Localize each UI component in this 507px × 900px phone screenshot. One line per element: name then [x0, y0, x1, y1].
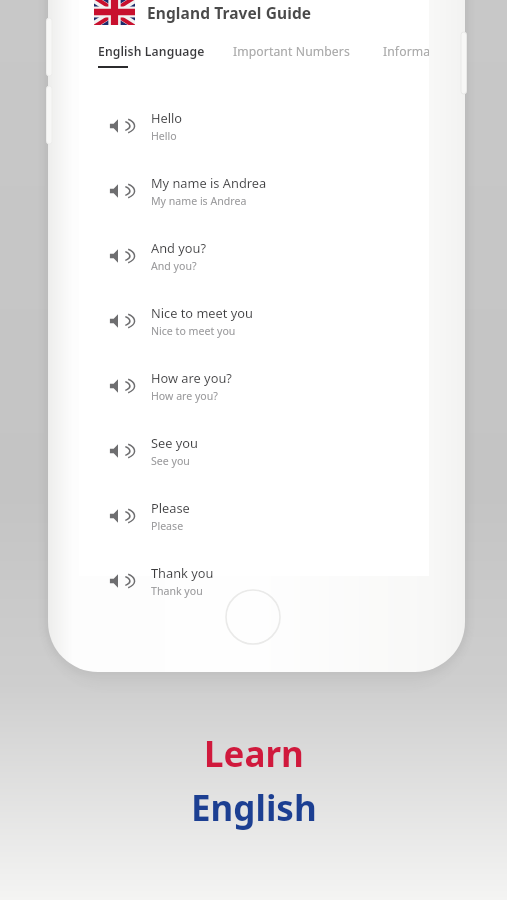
staticText: Hello — [151, 109, 183, 126]
button[interactable]: Informat — [369, 43, 429, 77]
staticText: How are you? — [151, 369, 232, 386]
button[interactable]: England Travel Guide — [94, 0, 444, 26]
button[interactable]: English Language — [79, 43, 219, 77]
staticText: Important Numbers — [233, 43, 350, 60]
staticText: Thank you — [151, 584, 203, 598]
staticText: And you? — [151, 259, 197, 273]
staticText: Nice to meet you — [151, 324, 236, 338]
staticText: Hello — [151, 129, 177, 143]
other: Play How are you? — [107, 375, 129, 397]
staticText: My name is Andrea — [151, 174, 267, 191]
other: Play Thank you — [107, 570, 129, 592]
button[interactable]: Play Hello — [79, 93, 429, 158]
button[interactable]: Important Numbers — [219, 43, 369, 77]
staticText: See you — [151, 454, 190, 468]
staticText: Learn — [204, 730, 304, 778]
staticText: Please — [151, 519, 184, 533]
staticText: English — [191, 784, 317, 832]
staticText: Nice to meet you — [151, 304, 253, 321]
staticText: My name is Andrea — [151, 194, 247, 208]
other: Play See you — [107, 440, 129, 462]
staticText: See you — [151, 434, 198, 451]
staticText: Please — [151, 499, 190, 516]
staticText: England Travel Guide — [147, 2, 312, 23]
button[interactable]: Play My name is Andrea — [79, 158, 429, 223]
staticText: Thank you — [151, 564, 214, 581]
staticText: English Language — [98, 43, 205, 60]
other: Play Please — [107, 505, 129, 527]
button[interactable]: Play Thank you — [79, 548, 429, 613]
other: Play Hello — [107, 115, 129, 137]
other: Play And you? — [107, 245, 129, 267]
button[interactable]: Play And you? — [79, 223, 429, 288]
other: Play My name is Andrea — [107, 180, 129, 202]
other: Play Nice to meet you — [107, 310, 129, 332]
button[interactable]: Play Nice to meet you — [79, 288, 429, 353]
button[interactable]: Play How are you? — [79, 353, 429, 418]
button[interactable]: Play See you — [79, 418, 429, 483]
button[interactable]: Play Please — [79, 483, 429, 548]
staticText: How are you? — [151, 389, 218, 403]
button[interactable]: Home — [225, 589, 281, 645]
staticText: And you? — [151, 239, 207, 256]
staticText: Informat — [383, 43, 429, 60]
